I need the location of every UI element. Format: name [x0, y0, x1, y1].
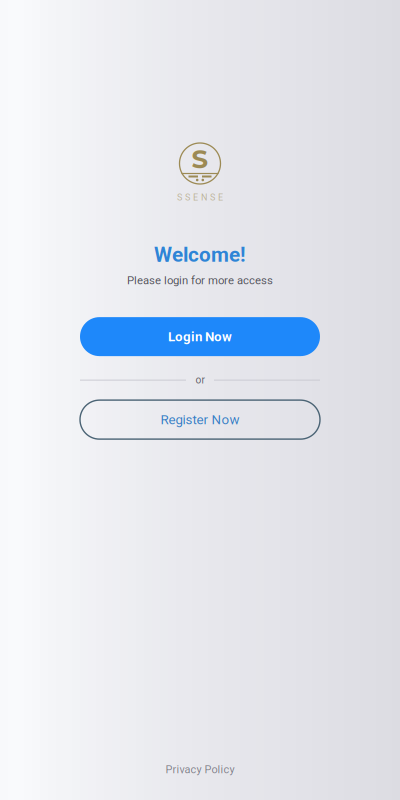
staticText: Privacy Policy: [165, 763, 234, 776]
button[interactable]: Register Now: [80, 400, 320, 439]
staticText: S: [191, 143, 208, 175]
button[interactable]: Login Now: [80, 317, 320, 356]
staticText: Please login for more access: [127, 274, 273, 287]
staticText: Register Now: [160, 412, 239, 427]
button[interactable]: Privacy Policy: [165, 763, 234, 776]
staticText: SSENSE: [177, 192, 223, 203]
staticText: or: [195, 374, 204, 386]
staticText: Login Now: [168, 329, 232, 344]
staticText: Welcome!: [154, 243, 246, 267]
